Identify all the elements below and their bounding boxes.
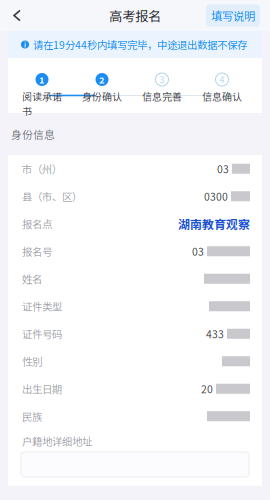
staticText: 高考报名 <box>109 6 161 25</box>
staticText: 报名号 <box>22 244 52 259</box>
staticText: 市（州） <box>22 161 62 176</box>
staticText: i <box>24 40 26 49</box>
staticText: 0300 <box>204 189 228 204</box>
button[interactable]: 报名号 <box>8 237 262 265</box>
staticText: 填写说明 <box>211 7 255 24</box>
button[interactable]: 县（市、区） <box>8 182 262 210</box>
staticText: 湖南教育观察 <box>178 215 250 232</box>
button[interactable]: 报名点 <box>8 210 262 237</box>
staticText: 1 <box>39 73 45 86</box>
button[interactable]: 姓名 <box>8 265 262 292</box>
staticText: 民族 <box>22 409 42 424</box>
staticText: 03 <box>192 244 204 259</box>
staticText: 请在19分44秒内填写完毕，中途退出数据不保存 <box>33 37 247 52</box>
staticText: 20 <box>201 381 213 396</box>
staticText: 姓名 <box>22 271 42 286</box>
staticText: 县（市、区） <box>22 189 82 204</box>
button[interactable]: 性别 <box>8 347 262 375</box>
staticText: 报名点 <box>22 216 52 231</box>
staticText: 2 <box>99 73 105 86</box>
staticText: 身份确认 <box>82 89 122 103</box>
staticText: 433 <box>206 326 224 341</box>
staticText: 03 <box>217 161 229 176</box>
button[interactable]: 填写说明 <box>206 4 270 27</box>
staticText: 信息确认 <box>202 89 242 103</box>
staticText: 证件号码 <box>22 326 62 341</box>
button[interactable]: 市（州） <box>8 155 262 182</box>
staticText: 身份信息 <box>11 126 55 142</box>
staticText: 出生日期 <box>22 381 62 396</box>
staticText: 性别 <box>22 354 42 369</box>
button[interactable]: 民族 <box>8 402 262 430</box>
staticText: 证件类型 <box>22 299 62 314</box>
staticText: 4 <box>219 73 224 86</box>
button[interactable]: 证件类型 <box>8 292 262 320</box>
staticText: 户籍地详细地址 <box>22 433 92 449</box>
staticText: 信息完善 <box>142 89 182 103</box>
button[interactable]: 出生日期 <box>8 375 262 402</box>
staticText: 阅读承诺书 <box>22 89 62 118</box>
button[interactable]: 证件号码 <box>8 320 262 347</box>
button[interactable]: Back <box>0 0 32 31</box>
staticText: 3 <box>159 73 164 86</box>
